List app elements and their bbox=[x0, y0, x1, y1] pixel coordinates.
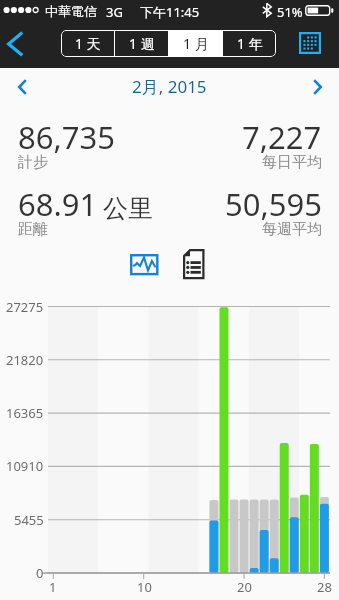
button[interactable]: 1 年 bbox=[223, 30, 276, 57]
staticText: 1 bbox=[49, 578, 57, 596]
staticText: 50,595 bbox=[225, 183, 322, 225]
staticText: 計步 bbox=[18, 153, 48, 172]
button[interactable]: List view bbox=[179, 246, 211, 284]
button[interactable]: Next month bbox=[295, 68, 339, 105]
staticText: 距離 bbox=[18, 220, 48, 239]
staticText: 16365 bbox=[6, 404, 44, 422]
staticText: 10 bbox=[137, 578, 152, 596]
button[interactable]: Previous month bbox=[0, 68, 44, 105]
staticText: 2月, 2015 bbox=[132, 75, 207, 98]
staticText: 5455 bbox=[14, 511, 44, 529]
staticText: 每週平均 bbox=[262, 220, 322, 239]
staticText: 28 bbox=[317, 578, 332, 596]
staticText: 每日平均 bbox=[262, 153, 322, 172]
staticText: 0 bbox=[36, 564, 44, 582]
staticText: 1 年 bbox=[237, 34, 263, 53]
button[interactable]: 1 天 bbox=[61, 30, 114, 57]
staticText: 1 月 bbox=[183, 34, 209, 53]
staticText: 27275 bbox=[6, 298, 44, 316]
button[interactable]: Chart view bbox=[125, 249, 164, 280]
button[interactable]: 1 月 bbox=[169, 30, 222, 57]
button[interactable]: Back bbox=[0, 20, 40, 68]
staticText: 3G bbox=[106, 3, 123, 21]
staticText: 86,735 bbox=[18, 116, 115, 158]
staticText: 21820 bbox=[6, 351, 44, 369]
staticText: 68.91 bbox=[18, 183, 98, 225]
staticText: 7,227 bbox=[242, 116, 322, 158]
staticText: 1 週 bbox=[129, 34, 155, 53]
staticText: 公里 bbox=[103, 193, 153, 224]
staticText: 51% bbox=[277, 3, 303, 21]
staticText: 中華電信 bbox=[45, 3, 97, 19]
staticText: 下午11:45 bbox=[140, 3, 200, 21]
button[interactable]: Calendar grid bbox=[296, 29, 324, 57]
staticText: 10910 bbox=[6, 457, 44, 475]
staticText: 1 天 bbox=[75, 34, 101, 53]
staticText: 20 bbox=[237, 578, 252, 596]
button[interactable]: 1 週 bbox=[115, 30, 168, 57]
